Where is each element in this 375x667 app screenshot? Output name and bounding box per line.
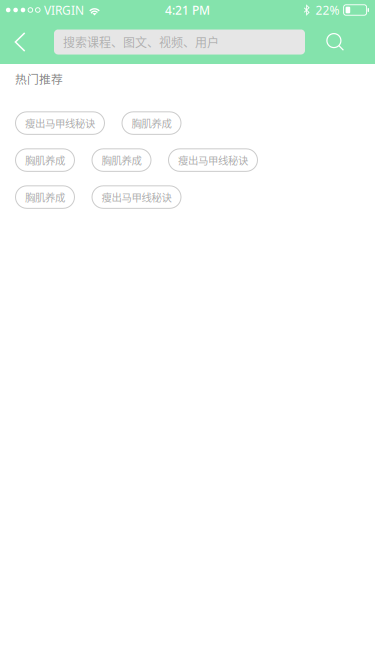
button[interactable]: 搜索课程、图文、视频、用户 — [54, 29, 305, 54]
staticText: 胸肌养成 — [131, 116, 171, 131]
staticText: 瘦出马甲线秘诀 — [178, 153, 248, 168]
button[interactable]: 瘦出马甲线秘诀 — [168, 149, 257, 171]
staticText: 瘦出马甲线秘诀 — [25, 116, 95, 131]
button[interactable]: 胸肌养成 — [92, 149, 151, 171]
staticText: 瘦出马甲线秘诀 — [101, 190, 171, 205]
staticText: 4:21 PM — [165, 2, 210, 18]
staticText: 胸肌养成 — [101, 153, 141, 168]
button[interactable]: Search — [313, 20, 357, 64]
staticText: 22% — [316, 2, 340, 18]
button[interactable]: 胸肌养成 — [122, 112, 181, 134]
staticText: VIRGIN — [44, 2, 84, 18]
button[interactable]: Back — [0, 20, 40, 64]
staticText: 搜索课程、图文、视频、用户 — [63, 33, 219, 51]
staticText: 胸肌养成 — [25, 190, 65, 205]
button[interactable]: 胸肌养成 — [15, 149, 74, 171]
button[interactable]: 胸肌养成 — [15, 186, 74, 208]
button[interactable]: 瘦出马甲线秘诀 — [15, 112, 104, 134]
staticText: 胸肌养成 — [25, 153, 65, 168]
staticText: 热门推荐 — [15, 70, 63, 87]
button[interactable]: 瘦出马甲线秘诀 — [92, 186, 181, 208]
